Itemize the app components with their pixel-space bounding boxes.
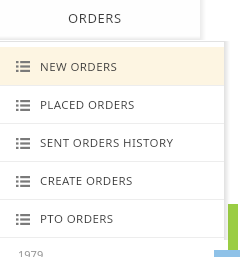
staticText: NEW ORDERS bbox=[40, 59, 118, 75]
button[interactable]: CREATE ORDERS bbox=[0, 162, 224, 200]
button[interactable]: PTO ORDERS bbox=[0, 200, 224, 238]
staticText: PTO ORDERS bbox=[40, 211, 114, 227]
staticText: 1979 bbox=[18, 247, 44, 257]
staticText: PLACED ORDERS bbox=[40, 97, 135, 113]
staticText: CREATE ORDERS bbox=[40, 173, 133, 189]
staticText: ORDERS bbox=[68, 9, 122, 27]
button[interactable]: PLACED ORDERS bbox=[0, 86, 224, 124]
button[interactable]: SENT ORDERS HISTORY bbox=[0, 124, 224, 162]
button[interactable]: NEW ORDERS bbox=[0, 47, 224, 86]
staticText: SENT ORDERS HISTORY bbox=[40, 135, 174, 151]
